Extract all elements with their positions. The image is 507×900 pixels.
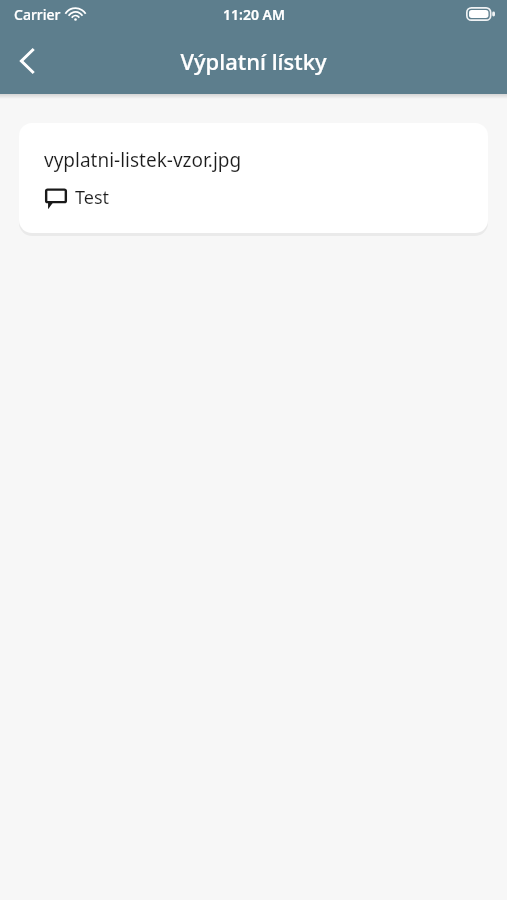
staticText: Výplatní lístky (180, 46, 327, 76)
staticText: vyplatni-listek-vzor.jpg (44, 147, 242, 173)
staticText: Carrier (14, 5, 61, 24)
button[interactable]: vyplatni-listek-vzor.jpg (19, 123, 488, 233)
staticText: 11:20 AM (223, 5, 285, 24)
staticText: Test (75, 185, 110, 210)
button[interactable]: Back (0, 33, 56, 89)
